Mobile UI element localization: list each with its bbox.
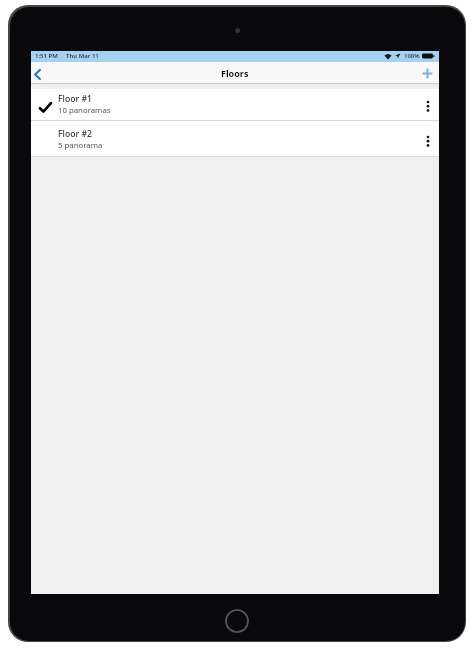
staticText: Floor #1 (58, 93, 93, 105)
staticText: 5 panorama (58, 140, 103, 151)
staticText: 10 panoramas (58, 105, 111, 116)
staticText: Floors (221, 67, 249, 79)
staticText: 1:51 PM (35, 52, 58, 60)
button[interactable]: Floor #1 (31, 89, 439, 120)
button[interactable]: Floor #2 (31, 121, 439, 156)
button[interactable] (31, 62, 46, 84)
button[interactable] (416, 121, 439, 156)
staticText: Thu Mar 11 (66, 52, 99, 60)
button[interactable] (416, 89, 439, 120)
staticText: Floor #2 (58, 128, 93, 140)
button[interactable] (420, 66, 434, 80)
staticText: 100% (404, 52, 420, 60)
